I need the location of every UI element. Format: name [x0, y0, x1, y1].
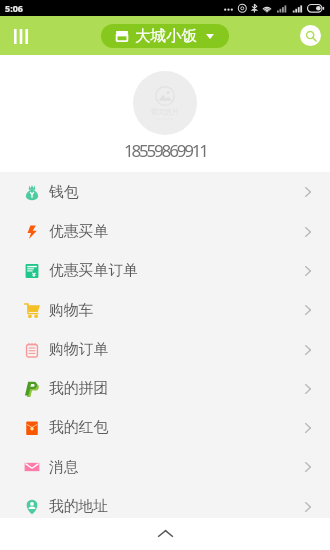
staticText: 优惠买单	[49, 222, 305, 241]
staticText: 大城小饭	[135, 26, 197, 46]
button[interactable]: Search	[300, 25, 321, 46]
button[interactable]: 消息	[0, 447, 330, 487]
staticText: 钱包	[49, 183, 305, 202]
button[interactable]: 购物订单	[0, 330, 330, 369]
staticText: 消息	[49, 458, 305, 477]
staticText: 18559869911	[124, 139, 207, 162]
staticText: 购物车	[49, 301, 305, 320]
staticText: 5:06	[5, 2, 23, 14]
button[interactable]: 我的地址	[0, 487, 330, 518]
button[interactable]: 购物车	[0, 290, 330, 330]
button[interactable]: 优惠买单	[0, 212, 330, 251]
staticText: 优惠买单订单	[49, 261, 305, 280]
button[interactable]: Menu	[6, 21, 36, 51]
button[interactable]: 我的红包	[0, 408, 330, 447]
button[interactable]: Avatar	[133, 71, 197, 135]
button[interactable]: 优惠买单订单	[0, 251, 330, 290]
button[interactable]: 钱包	[0, 172, 330, 212]
staticText: 我的拼团	[49, 379, 305, 398]
staticText: 购物订单	[49, 340, 305, 359]
button[interactable]: Collapse	[0, 518, 330, 549]
staticText: 我的地址	[49, 497, 305, 516]
button[interactable]: 我的拼团	[0, 369, 330, 408]
staticText: 我的红包	[49, 418, 305, 437]
button[interactable]: 大城小饭	[101, 24, 229, 48]
